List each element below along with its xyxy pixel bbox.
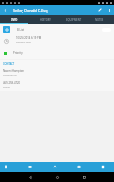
staticText: B List: [17, 28, 25, 32]
staticText: EQUIPMENT: [66, 18, 82, 22]
button[interactable]: Navigate: [49, 162, 61, 172]
button[interactable]: Naomi Hampton: [0, 67, 114, 79]
button[interactable]: INFO: [0, 15, 28, 24]
button[interactable]: Back: [0, 5, 11, 15]
staticText: Customer ID: [3, 74, 17, 77]
staticText: 10/25/2014 6:19 PM: [16, 36, 42, 40]
button[interactable]: 469-258-4720: [0, 79, 114, 91]
button[interactable]: EQUIPMENT: [62, 15, 86, 24]
button[interactable]: 10/25/2014 6:19 PM: [0, 35, 114, 47]
staticText: HISTORY: [40, 18, 51, 22]
staticText: Phone: [3, 86, 10, 89]
staticText: 469-258-4720: [3, 81, 21, 85]
staticText: Naomi Hampton: [3, 69, 25, 73]
staticText: Seiler, Donald C-Esq: [13, 8, 48, 13]
button[interactable]: Job list: [0, 162, 12, 172]
button[interactable]: Camera: [73, 162, 85, 172]
button[interactable]: B List: [0, 24, 114, 35]
staticText: CONTACT: [3, 62, 15, 65]
button[interactable]: Edit: [95, 5, 105, 15]
button[interactable]: Back: [25, 172, 35, 182]
staticText: Priority: [13, 51, 23, 55]
button[interactable]: Messages: [24, 162, 36, 172]
button[interactable]: HISTORY: [28, 15, 62, 24]
button[interactable]: Priority: [0, 47, 114, 59]
button[interactable]: Home: [52, 172, 62, 182]
staticText: Planned Time: [16, 41, 31, 44]
button[interactable]: Recent apps: [79, 172, 89, 182]
button[interactable]: More options: [105, 5, 114, 15]
staticText: NOTES: [95, 18, 104, 22]
button[interactable]: Complete: [97, 162, 109, 172]
button[interactable]: NOTES: [86, 15, 112, 24]
staticText: INFO: [11, 18, 18, 22]
